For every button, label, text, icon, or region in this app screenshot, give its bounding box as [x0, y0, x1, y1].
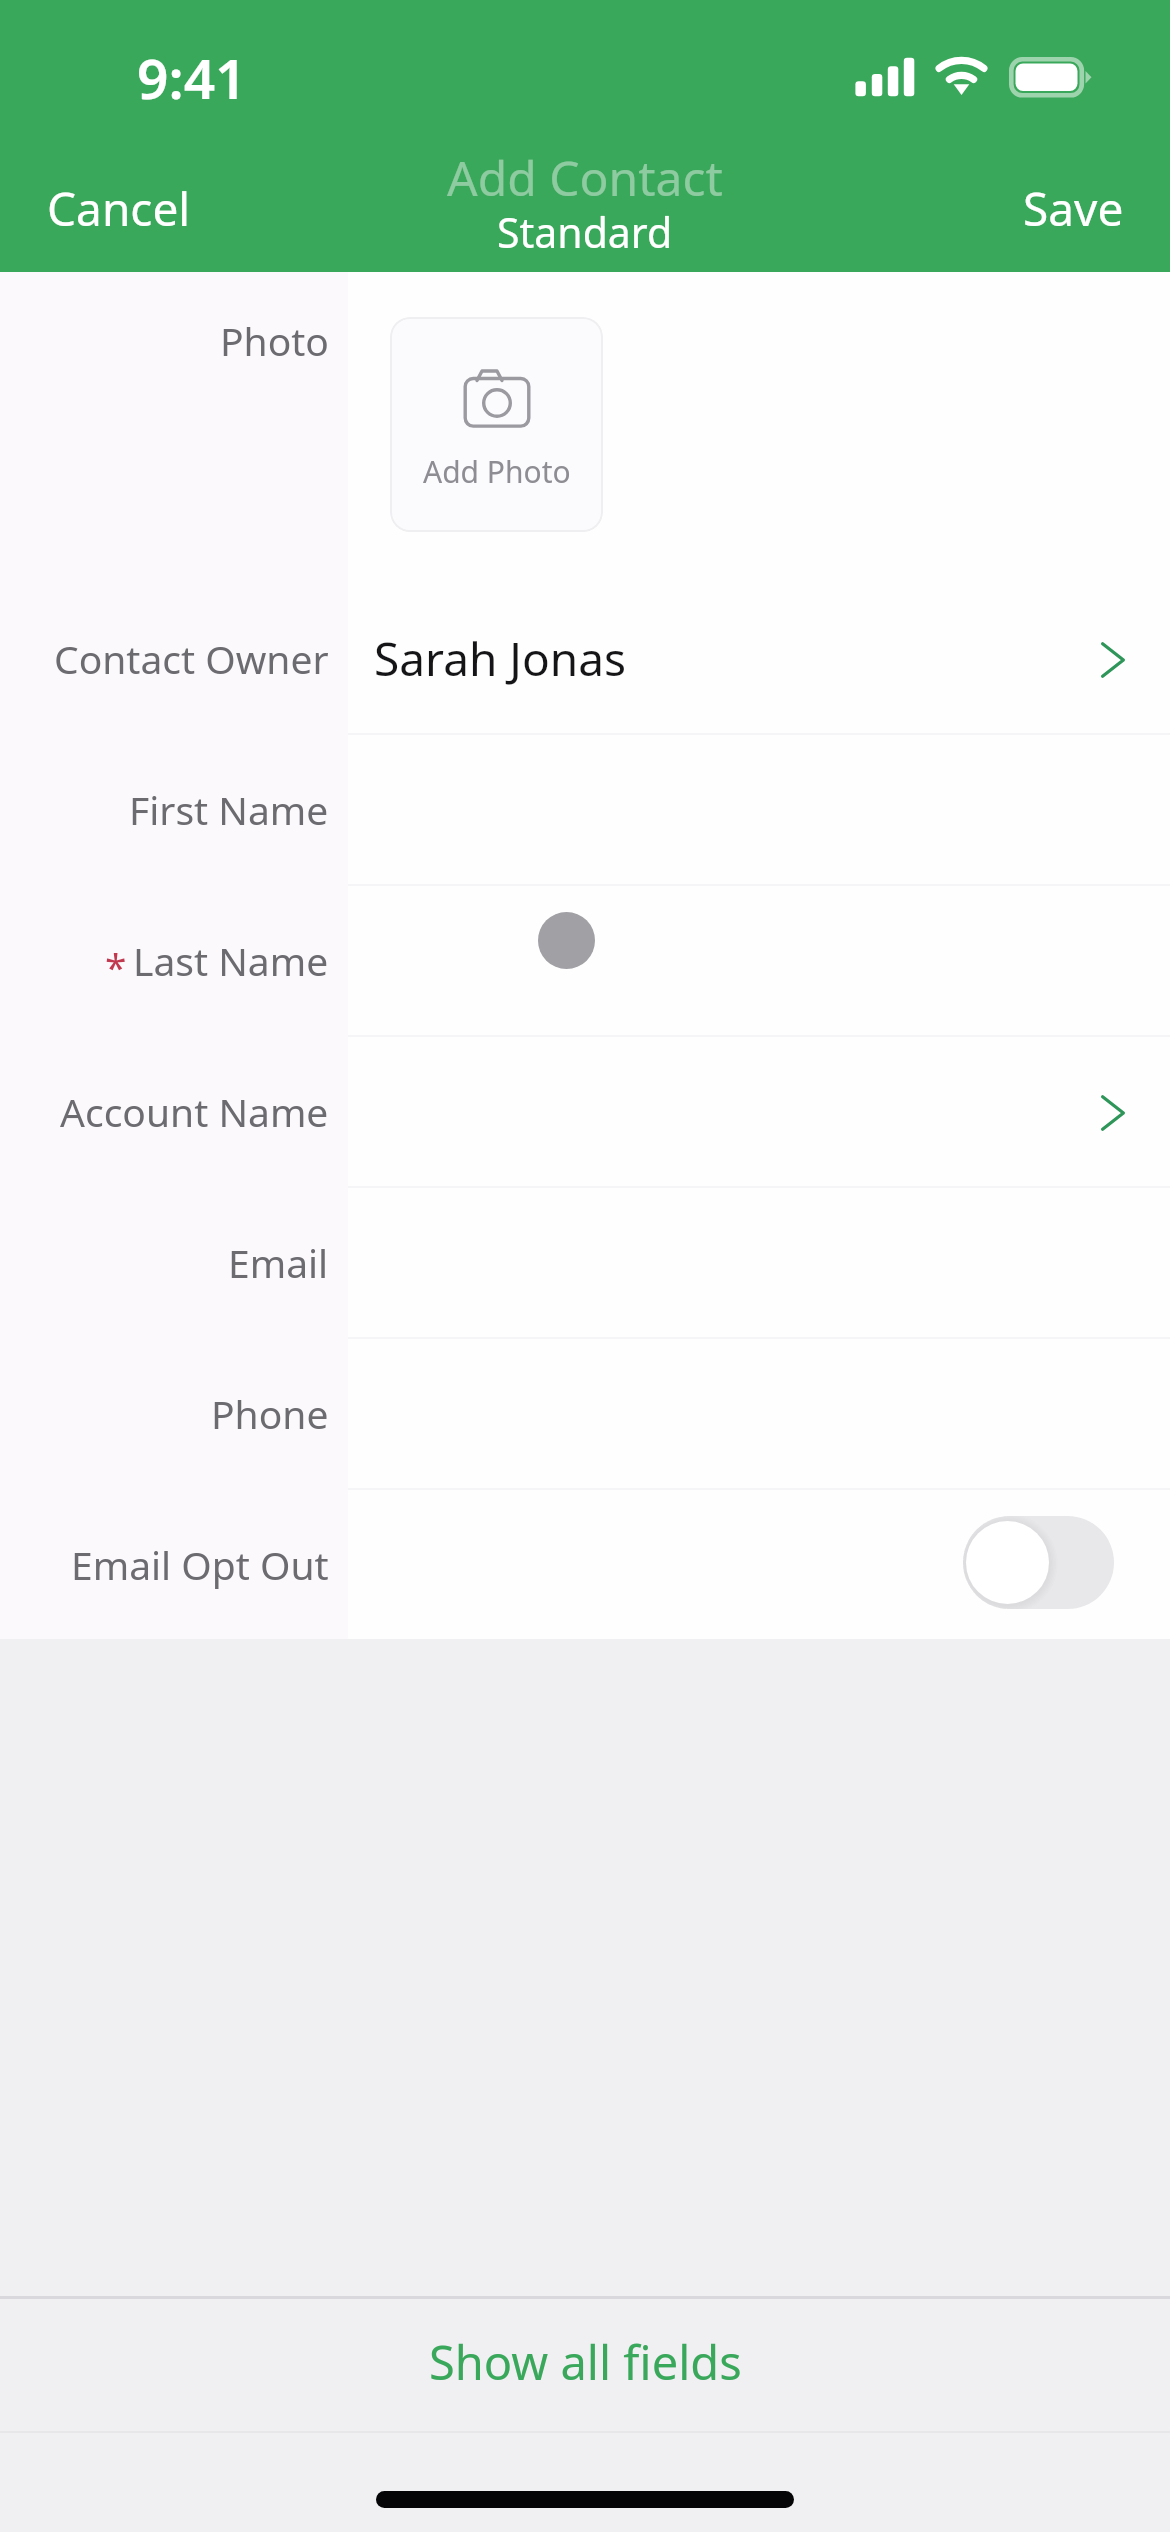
staticText: Photo [220, 314, 329, 367]
button[interactable]: Show all fields [0, 2299, 1170, 2431]
staticText: Standard [497, 204, 673, 260]
staticText: Cancel [47, 177, 191, 240]
button[interactable] [348, 886, 1170, 1035]
button[interactable]: Sarah Jonas [348, 584, 1170, 733]
staticText: Contact Owner [54, 632, 329, 685]
staticText: Save [1023, 177, 1124, 240]
staticText: Account Name [60, 1085, 329, 1138]
staticText: 9:41 [137, 40, 247, 115]
staticText: Add Photo [423, 451, 571, 492]
staticText: Sarah Jonas [374, 627, 626, 690]
button[interactable]: Save [999, 161, 1148, 256]
staticText: Email Opt Out [71, 1538, 329, 1591]
button[interactable]: Email Opt Out toggle [348, 1490, 1170, 1639]
button[interactable]: Open [1078, 1077, 1148, 1147]
staticText: Last Name [133, 934, 329, 987]
button[interactable]: Cancel [23, 161, 215, 256]
button[interactable]: Open [348, 1037, 1170, 1186]
button[interactable]: Add Photo [390, 317, 603, 532]
staticText: Add Contact [447, 145, 723, 210]
button[interactable]: Email Opt Out toggle [963, 1516, 1114, 1609]
staticText: Email [228, 1236, 329, 1289]
staticText: First Name [129, 783, 329, 836]
staticText: Phone [211, 1387, 329, 1440]
staticText: Show all fields [429, 2330, 742, 2394]
staticText: * [105, 940, 127, 993]
button[interactable]: Open [1078, 624, 1148, 694]
